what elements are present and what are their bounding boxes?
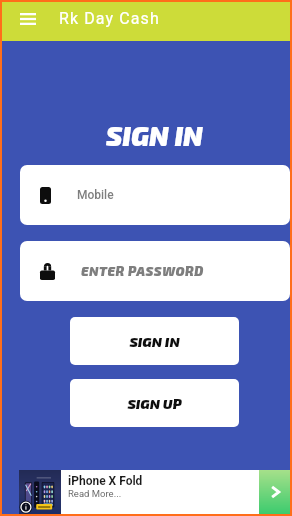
staticText: SIGN IN xyxy=(129,333,180,350)
button[interactable]: SIGN UP xyxy=(70,379,239,427)
staticText: SIGN IN xyxy=(106,119,203,149)
button[interactable]: ENTER PASSWORD xyxy=(20,241,290,301)
button[interactable]: Open navigation menu xyxy=(13,0,43,37)
staticText: Mobile xyxy=(77,188,114,202)
staticText: iPhone X Fold xyxy=(68,474,143,488)
staticText: Read More... xyxy=(68,488,122,499)
staticText: Rk Day Cash xyxy=(59,9,160,28)
staticText: SIGN UP xyxy=(127,395,182,412)
button[interactable]: SIGN IN xyxy=(70,317,239,365)
button[interactable]: Open ad xyxy=(259,470,290,514)
button[interactable]: iPhone X Fold xyxy=(19,470,290,514)
staticText: ENTER PASSWORD xyxy=(81,263,204,279)
button[interactable]: Mobile xyxy=(20,165,290,225)
